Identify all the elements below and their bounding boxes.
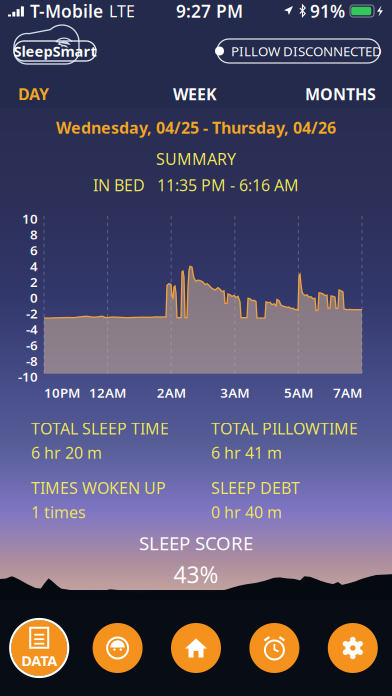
staticText: PILLOW DISCONNECTED (231, 42, 382, 60)
staticText: IN BED 11:35 PM - 6:16 AM (93, 174, 299, 196)
button[interactable]: MONTHS (305, 80, 392, 108)
staticText: 5AM (284, 384, 313, 401)
staticText: T-Mobile (30, 0, 103, 22)
staticText: 91% (310, 0, 345, 22)
staticText: -6 (26, 336, 38, 354)
staticText: 2AM (157, 384, 186, 401)
staticText: SLEEP SCORE (139, 531, 253, 555)
staticText: 3AM (220, 384, 249, 401)
staticText: 7AM (333, 384, 362, 401)
staticText: MONTHS (305, 83, 376, 105)
staticText: 10 (22, 210, 38, 227)
button[interactable]: Profile (78, 623, 157, 673)
staticText: 6 (30, 241, 38, 259)
staticText: TOTAL SLEEP TIME (31, 418, 169, 439)
staticText: -8 (26, 352, 38, 370)
staticText: 4 (30, 257, 38, 275)
staticText: SLEEP DEBT (211, 477, 300, 498)
staticText: -10 (18, 368, 38, 385)
staticText: DATA (21, 651, 57, 670)
button[interactable]: Settings (314, 623, 392, 673)
staticText: 0 (30, 289, 38, 306)
staticText: 6 hr 41 m (211, 442, 282, 463)
button[interactable]: WEEK (148, 80, 242, 108)
staticText: Wednesday, 04/25 - Thursday, 04/26 (56, 117, 336, 138)
button[interactable]: DAY (0, 80, 148, 108)
staticText: 43% (173, 559, 218, 590)
staticText: LTE (109, 0, 135, 22)
button[interactable]: Alarm (235, 623, 314, 673)
staticText: 2 (30, 273, 38, 291)
button[interactable]: PILLOW DISCONNECTED (217, 39, 380, 63)
staticText: SleepSmart (13, 41, 96, 61)
staticText: -4 (26, 320, 38, 338)
button[interactable]: Data (0, 620, 78, 676)
staticText: DAY (18, 83, 49, 105)
staticText: 10PM (44, 384, 80, 401)
staticText: -2 (26, 304, 38, 322)
staticText: TOTAL PILLOWTIME (211, 418, 358, 439)
staticText: TIMES WOKEN UP (31, 477, 166, 498)
staticText: 12AM (89, 384, 126, 401)
staticText: SUMMARY (156, 148, 236, 169)
staticText: 6 hr 20 m (31, 442, 102, 463)
staticText: 8 (30, 225, 38, 243)
staticText: 1 times (31, 501, 86, 523)
button[interactable]: Home (157, 623, 235, 673)
staticText: WEEK (173, 83, 217, 105)
staticText: 0 hr 40 m (211, 501, 282, 523)
staticText: 9:27 PM (176, 0, 243, 22)
